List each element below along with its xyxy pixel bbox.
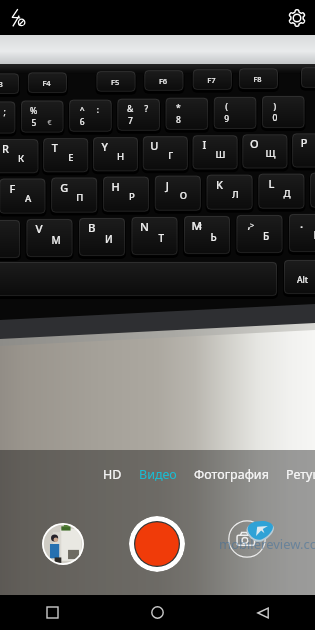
button[interactable]: Home (105, 595, 210, 630)
button[interactable]: Flash off (7, 7, 29, 29)
button[interactable]: Ретушь (286, 460, 315, 489)
button[interactable]: Settings (284, 5, 310, 31)
button[interactable]: Gallery (42, 523, 84, 565)
button[interactable]: HD (103, 460, 122, 489)
button[interactable]: Фотография (194, 460, 269, 489)
other: mobile-review logo (246, 519, 274, 542)
button[interactable]: Видео (139, 460, 177, 489)
button[interactable]: Recents (0, 595, 105, 630)
staticText: HD (103, 466, 122, 483)
staticText: Видео (139, 466, 177, 483)
staticText: Фотография (194, 466, 269, 483)
button[interactable]: Switch camera (228, 520, 266, 558)
button[interactable]: Record (129, 516, 185, 572)
staticText: Ретушь (286, 466, 315, 483)
button[interactable]: Back (210, 595, 315, 630)
